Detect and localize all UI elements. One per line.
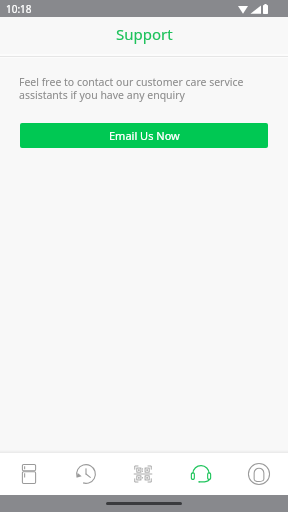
button[interactable]: Scan barcode <box>114 453 172 495</box>
staticText: Feel free to contact our customer care s… <box>19 75 269 102</box>
button[interactable]: Account <box>230 453 288 495</box>
button[interactable]: Email Us Now <box>20 123 268 148</box>
button[interactable]: Fridge <box>0 453 57 495</box>
staticText: Email Us Now <box>109 128 180 143</box>
button[interactable]: Support <box>172 453 230 495</box>
staticText: 10:18 <box>6 2 32 16</box>
button[interactable]: History <box>57 453 114 495</box>
staticText: Support <box>116 24 173 44</box>
